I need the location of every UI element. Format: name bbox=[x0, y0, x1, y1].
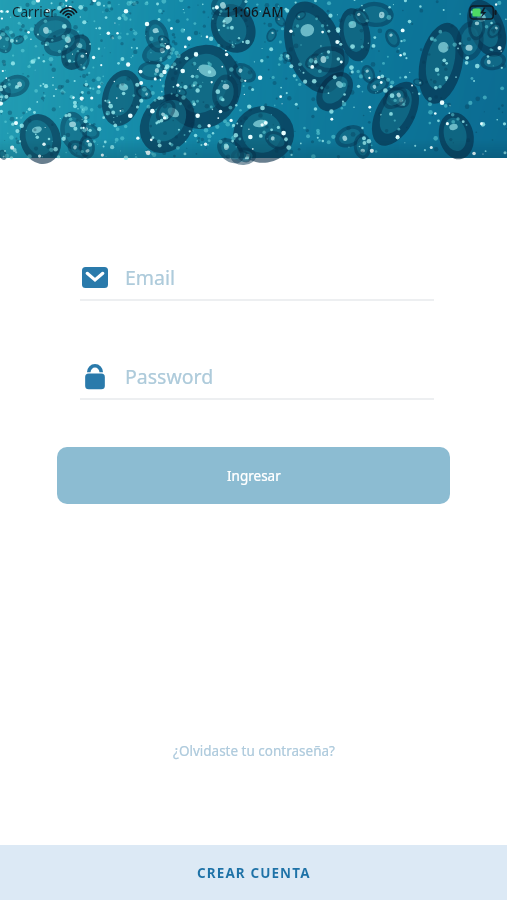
staticText: ¿Olvidaste tu contraseña? bbox=[173, 742, 335, 760]
other: Email bbox=[80, 267, 110, 288]
staticText: Password bbox=[125, 363, 214, 390]
button[interactable]: Email bbox=[57, 255, 450, 299]
staticText: Carrier bbox=[12, 3, 56, 21]
button[interactable]: CREAR CUENTA bbox=[0, 845, 507, 900]
other: Password bbox=[80, 361, 110, 391]
button[interactable]: Ingresar bbox=[57, 447, 450, 504]
staticText: 11:06 AM bbox=[224, 3, 284, 21]
staticText: Ingresar bbox=[227, 467, 281, 485]
button[interactable]: ¿Olvidaste tu contraseña? bbox=[57, 742, 450, 760]
staticText: CREAR CUENTA bbox=[197, 864, 311, 882]
button[interactable]: Password bbox=[57, 354, 450, 398]
staticText: Email bbox=[125, 264, 176, 291]
